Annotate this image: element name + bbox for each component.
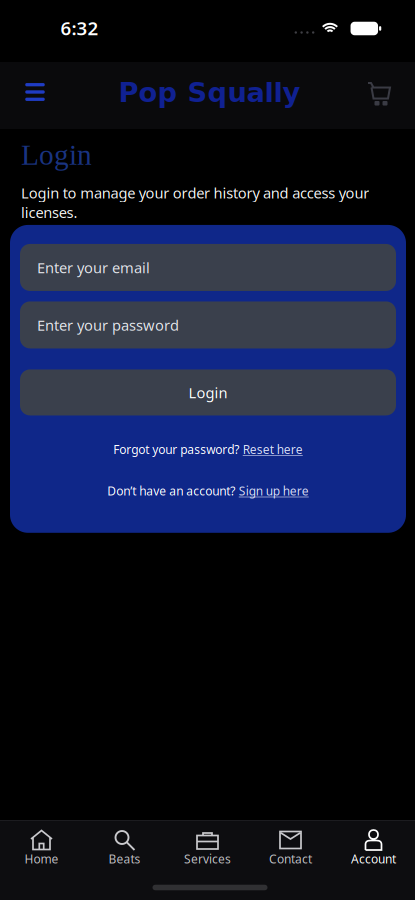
staticText: 6:32 xyxy=(60,16,98,40)
button[interactable] xyxy=(367,79,390,103)
staticText: Services xyxy=(184,851,231,867)
button[interactable]: Contact xyxy=(249,829,332,887)
button[interactable]: Forgot your password? xyxy=(113,441,303,457)
button[interactable]: Home xyxy=(0,829,83,887)
button[interactable] xyxy=(17,74,53,110)
staticText: Login xyxy=(21,138,92,171)
staticText: Enter your email xyxy=(37,258,150,277)
button[interactable]: Don’t have an account? xyxy=(107,483,309,499)
button[interactable]: Services xyxy=(166,829,249,887)
button[interactable]: Login xyxy=(20,369,396,415)
staticText: Beats xyxy=(108,851,140,867)
staticText: Contact xyxy=(269,851,312,867)
button[interactable]: Enter your password xyxy=(20,301,396,348)
staticText: Enter your password xyxy=(37,315,179,335)
staticText: Reset here xyxy=(243,441,303,457)
staticText: Login to manage your order history and a… xyxy=(21,183,369,222)
button[interactable]: Account xyxy=(332,829,415,887)
staticText: Pop Squally xyxy=(118,77,300,108)
staticText: Forgot your password? xyxy=(113,441,239,457)
staticText: Login xyxy=(188,383,227,402)
staticText: Sign up here xyxy=(239,483,309,499)
staticText: Home xyxy=(24,851,58,867)
staticText: Don’t have an account? xyxy=(107,483,235,499)
button[interactable]: Beats xyxy=(83,829,166,887)
staticText: Account xyxy=(351,851,396,867)
button[interactable]: Enter your email xyxy=(20,244,396,291)
